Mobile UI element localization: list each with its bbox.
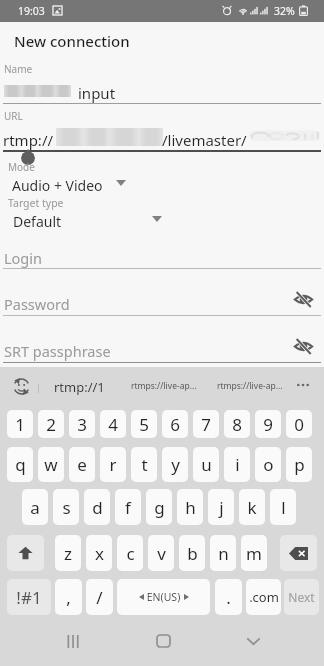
button[interactable]: s <box>53 489 79 525</box>
staticText: input <box>78 83 116 103</box>
button[interactable]: 6 <box>162 410 188 438</box>
button[interactable]: . <box>215 579 242 615</box>
button[interactable]: i <box>224 447 250 482</box>
button[interactable]: Space, EN(US) <box>117 579 210 615</box>
button[interactable]: c <box>117 535 143 571</box>
button[interactable]: p <box>286 447 312 482</box>
staticText: Next <box>288 589 315 605</box>
button[interactable]: o <box>255 447 281 482</box>
button[interactable]: Backspace <box>280 535 317 571</box>
button[interactable]: y <box>162 447 188 482</box>
staticText: 0 <box>294 413 304 436</box>
staticText: Login <box>4 248 42 268</box>
button[interactable]: t <box>131 447 157 482</box>
button[interactable]: b <box>179 535 205 571</box>
button[interactable]: Recent apps <box>52 627 94 655</box>
button[interactable]: 2 <box>38 410 64 438</box>
staticText: u <box>201 453 212 476</box>
staticText: l <box>281 496 286 519</box>
button[interactable]: 7 <box>193 410 219 438</box>
staticText: k <box>247 496 257 519</box>
button[interactable]: k <box>239 489 265 525</box>
staticText: 7 <box>201 413 211 436</box>
button[interactable]: q <box>7 447 33 482</box>
button[interactable]: Default <box>4 208 172 232</box>
button[interactable]: x <box>86 535 112 571</box>
staticText: EN(US) <box>144 590 184 604</box>
staticText: m <box>246 542 262 565</box>
button[interactable]: a <box>22 489 48 525</box>
button[interactable]: Stickers <box>8 373 34 399</box>
staticText: 3 <box>77 413 87 436</box>
staticText: 8 <box>232 413 242 436</box>
button[interactable]: 8 <box>224 410 250 438</box>
staticText: o <box>263 453 274 476</box>
button[interactable]: h <box>177 489 203 525</box>
button[interactable]: Login <box>0 240 324 270</box>
button[interactable]: r <box>100 447 126 482</box>
staticText: g <box>154 496 165 519</box>
button[interactable]: g <box>146 489 172 525</box>
button[interactable]: 5 <box>131 410 157 438</box>
button[interactable]: z <box>55 535 81 571</box>
staticText: 5 <box>139 413 149 436</box>
button[interactable]: Audio + Video <box>4 172 134 196</box>
button[interactable]: u <box>193 447 219 482</box>
button[interactable]: n <box>210 535 236 571</box>
staticText: Default <box>13 212 62 231</box>
button[interactable]: Close keyboard <box>232 627 274 655</box>
button[interactable]: 0 <box>286 410 312 438</box>
staticText: URL <box>4 109 23 123</box>
button[interactable]: j <box>208 489 234 525</box>
button[interactable]: 3 <box>69 410 95 438</box>
staticText: rtmp://1 <box>54 378 105 396</box>
button[interactable]: l <box>270 489 296 525</box>
staticText: SRT passphrase <box>4 341 111 361</box>
button[interactable]: rtmp://1 <box>47 375 117 395</box>
button[interactable]: f <box>115 489 141 525</box>
staticText: w <box>44 453 58 476</box>
button[interactable]: SRT passphrase <box>0 335 290 363</box>
staticText: / <box>96 586 103 609</box>
button[interactable]: 4 <box>100 410 126 438</box>
staticText: 4 <box>108 413 118 436</box>
button[interactable]: m <box>241 535 267 571</box>
button[interactable]: , <box>55 579 82 615</box>
staticText: . <box>226 586 231 609</box>
staticText: rtmp:// <box>3 130 54 150</box>
staticText: q <box>15 453 26 476</box>
staticText: p <box>294 453 305 476</box>
staticText: d <box>92 496 103 519</box>
button[interactable]: 1 <box>7 410 33 438</box>
staticText: 2 <box>46 413 56 436</box>
button[interactable]: v <box>148 535 174 571</box>
button[interactable]: 9 <box>255 410 281 438</box>
button[interactable]: New connection <box>14 31 130 51</box>
button[interactable]: rtmps://live-ap... <box>212 375 292 395</box>
staticText: !#1 <box>16 586 42 609</box>
staticText: Mode <box>8 160 35 174</box>
staticText: /livemaster/ <box>162 130 247 150</box>
button[interactable]: rtmps://live-ap... <box>126 375 206 395</box>
button[interactable]: e <box>69 447 95 482</box>
button[interactable]: Show password <box>288 286 318 312</box>
button[interactable]: More options <box>292 375 314 395</box>
staticText: 6 <box>170 413 180 436</box>
staticText: n <box>218 542 229 565</box>
staticText: e <box>77 453 87 476</box>
button[interactable]: Show password <box>288 333 318 359</box>
button[interactable]: Next <box>284 579 319 615</box>
staticText: i <box>235 453 240 476</box>
button[interactable]: !#1 <box>7 579 51 615</box>
button[interactable]: / <box>86 579 113 615</box>
staticText: x <box>95 542 104 565</box>
button[interactable]: Shift <box>7 535 44 571</box>
button[interactable]: .com <box>246 579 281 615</box>
button[interactable]: Password <box>0 288 290 316</box>
staticText: z <box>64 542 72 565</box>
button[interactable]: d <box>84 489 110 525</box>
button[interactable]: w <box>38 447 64 482</box>
staticText: .com <box>249 588 279 606</box>
staticText: c <box>126 542 135 565</box>
button[interactable]: Home <box>142 627 184 655</box>
